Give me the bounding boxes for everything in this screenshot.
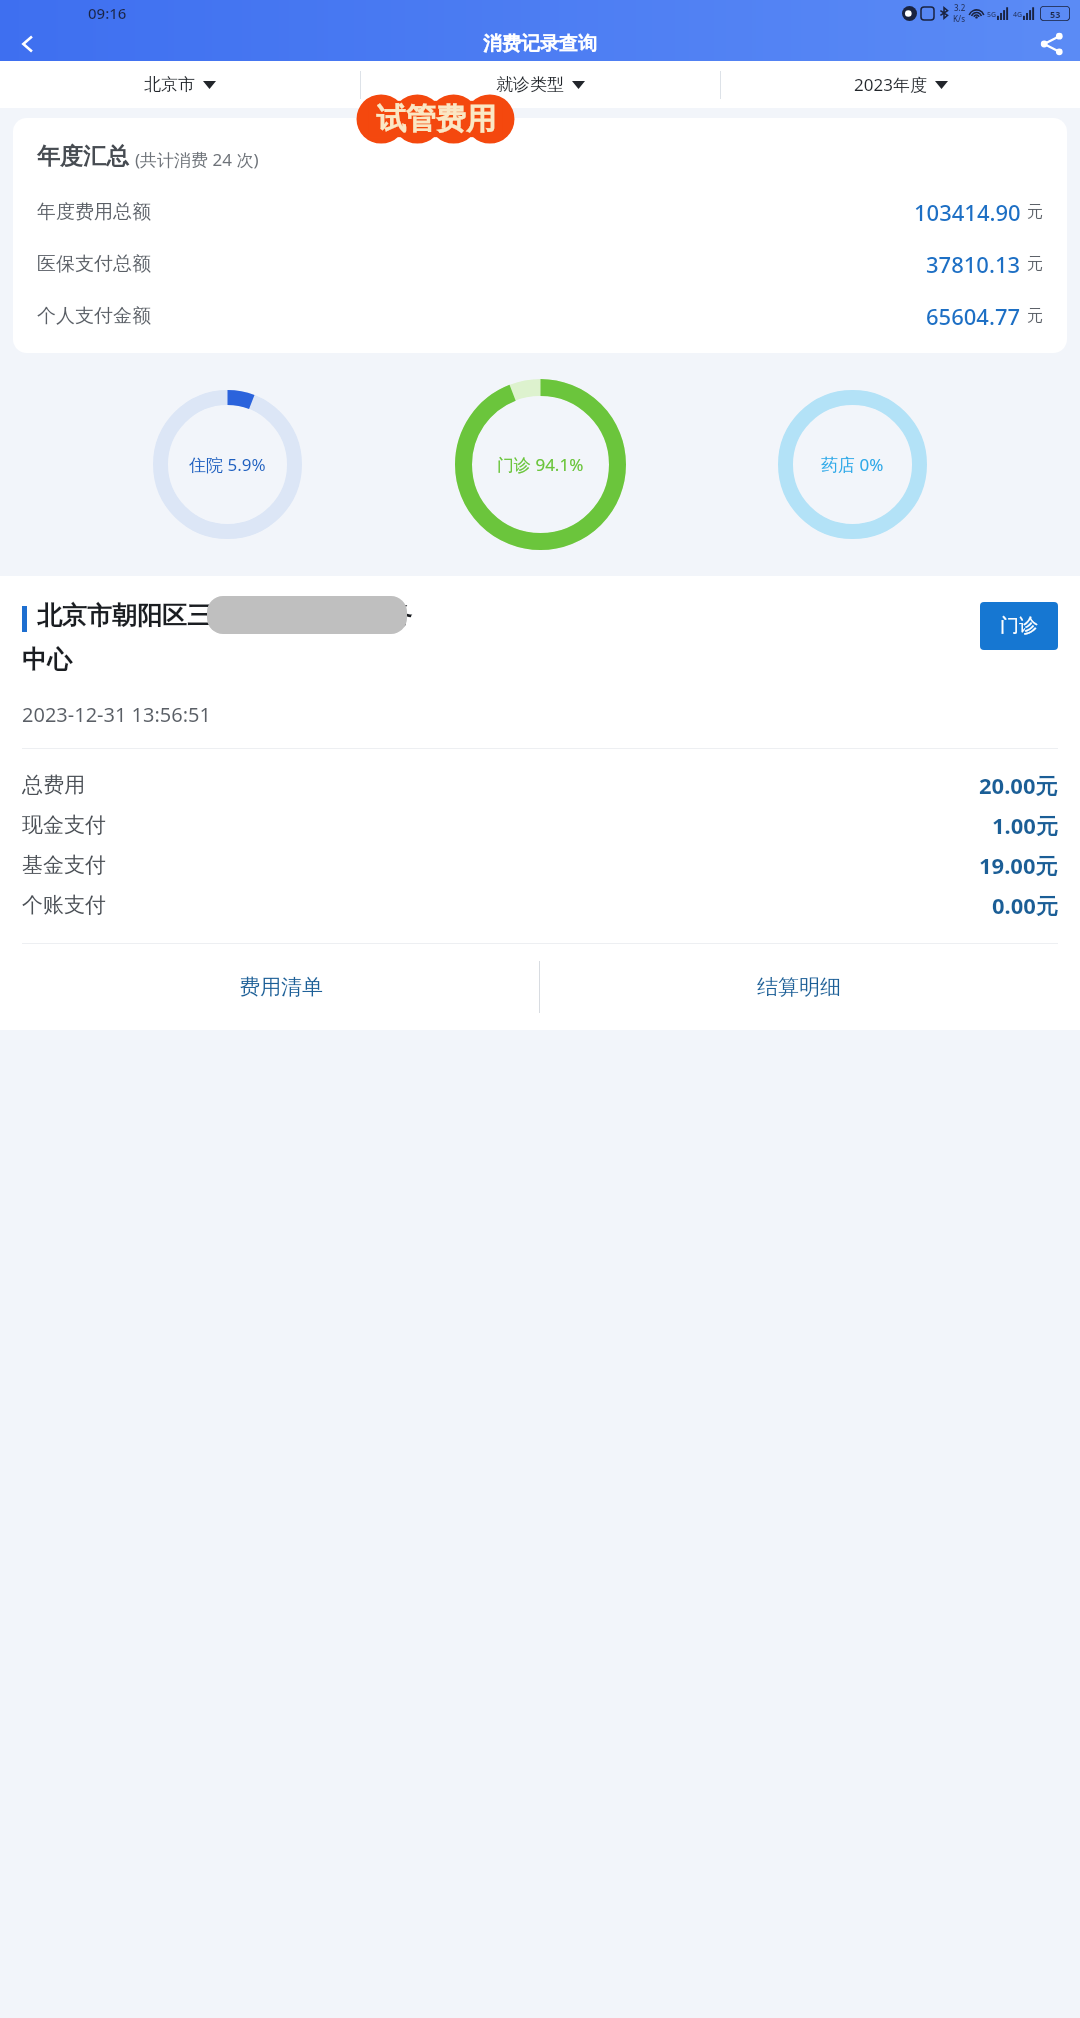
staticText: 中心 [22,644,72,675]
staticText: 103414.90 [914,197,1021,227]
staticText: 就诊类型 [496,74,564,95]
staticText: 个账支付 [22,892,106,918]
staticText: 年度费用总额 [37,200,151,224]
staticText: 试管费用 [376,100,496,138]
staticText: 个人支付金额 [37,304,151,328]
staticText: K/s [953,13,966,24]
staticText: 北京市 [144,74,195,95]
staticText: 门诊 94.1% [497,453,584,476]
staticText: (共计消费 24 次) [135,148,259,171]
staticText: 20.00元 [979,770,1058,800]
button[interactable]: 费用清单 [22,944,539,1030]
staticText: 3.2 [954,2,966,13]
staticText: 53 [1050,8,1061,20]
staticText: 药店 0% [821,453,884,476]
staticText: 09:16 [88,3,127,23]
staticText: 2023-12-31 13:56:51 [22,701,211,728]
staticText: 住院 5.9% [189,453,266,476]
staticText: 基金支付 [22,852,106,878]
staticText: 门诊 [1000,614,1038,638]
button[interactable]: 门诊 [980,602,1058,650]
button[interactable]: Share [1024,31,1080,57]
staticText: 65604.77 [926,301,1021,331]
staticText: 结算明细 [757,974,841,1000]
staticText: 费用清单 [239,974,323,1000]
staticText: 37810.13 [926,249,1021,279]
staticText: 元 [1027,254,1043,274]
button[interactable]: 就诊类型 [361,61,720,108]
staticText: 1.00元 [992,810,1058,840]
button[interactable]: 结算明细 [540,944,1058,1030]
staticText: 消费记录查询 [483,32,597,56]
staticText: 19.00元 [979,850,1058,880]
staticText: 医保支付总额 [37,252,151,276]
staticText: 现金支付 [22,812,106,838]
button[interactable]: Back [0,35,56,53]
staticText: 0.00元 [992,890,1058,920]
staticText: 元 [1027,306,1043,326]
button[interactable]: 2023年度 [721,61,1080,108]
staticText: 总费用 [22,772,85,798]
staticText: 北京市朝阳区三间房社区卫生服务 [37,600,412,631]
staticText: 4G [1013,10,1023,20]
staticText: 元 [1027,202,1043,222]
staticText: 年度汇总 [37,142,129,171]
staticText: 2023年度 [854,73,927,96]
staticText: 5G [987,10,997,20]
button[interactable]: 北京市 [0,61,360,108]
